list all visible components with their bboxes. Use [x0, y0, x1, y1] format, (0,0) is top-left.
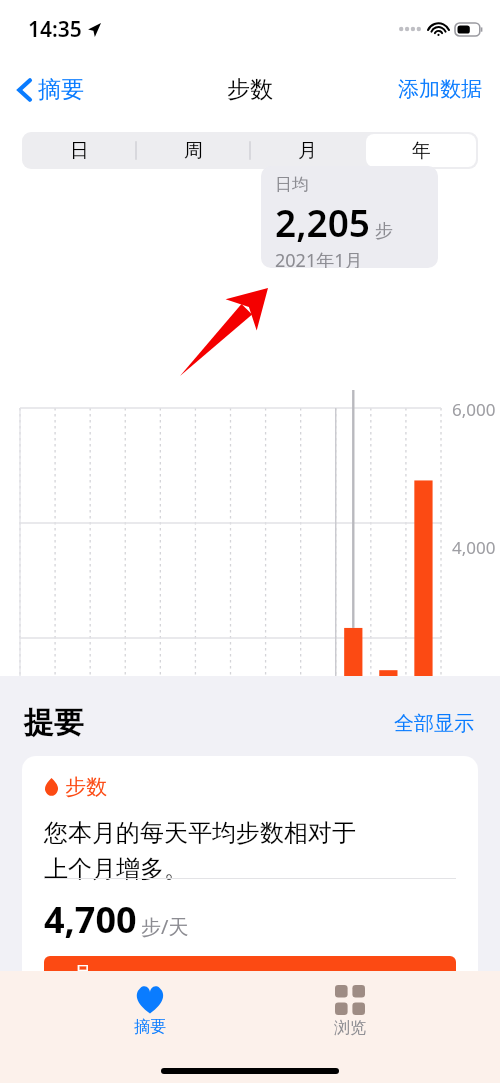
- staticText: 2021年1月: [275, 248, 363, 268]
- staticText: 年: [412, 139, 431, 163]
- staticText: 5: [69, 759, 79, 782]
- staticText: 提要: [24, 704, 84, 742]
- staticText: 全部显示: [394, 711, 474, 736]
- button[interactable]: 步数: [22, 756, 478, 996]
- button[interactable]: 添加数据: [394, 72, 486, 106]
- button[interactable]: 全部显示: [390, 707, 478, 740]
- staticText: 添加数据: [398, 76, 482, 102]
- staticText: 2,000: [452, 674, 496, 697]
- button[interactable]: 日: [24, 134, 134, 167]
- staticText: 步/天: [141, 913, 189, 940]
- button[interactable]: 摘要: [14, 71, 88, 108]
- staticText: 摘要: [134, 1017, 166, 1037]
- staticText: 您本月的每天平均步数相对于: [44, 818, 356, 848]
- staticText: 日: [70, 139, 89, 163]
- button[interactable]: 周: [138, 134, 248, 167]
- staticText: 步数: [65, 774, 107, 800]
- staticText: 14:35: [28, 15, 82, 44]
- staticText: 摘要: [38, 75, 84, 104]
- staticText: 2,205: [275, 197, 370, 247]
- staticText: 步数: [227, 75, 273, 104]
- staticText: 月: [298, 139, 317, 163]
- staticText: 上个月增多。: [44, 854, 188, 884]
- button[interactable]: 月: [252, 134, 362, 167]
- staticText: 6,000: [452, 398, 496, 421]
- staticText: 6: [104, 759, 114, 782]
- staticText: 周: [184, 139, 203, 163]
- button[interactable]: 浏览: [300, 981, 400, 1042]
- staticText: 日均: [275, 174, 309, 195]
- staticText: 步: [375, 220, 393, 243]
- staticText: 4,700: [44, 895, 137, 944]
- button[interactable]: 摘要: [100, 981, 200, 1041]
- staticText: 浏览: [334, 1018, 366, 1038]
- staticText: 一月: [54, 962, 92, 986]
- staticText: 4,000: [452, 536, 496, 559]
- button[interactable]: 年: [366, 134, 476, 167]
- button[interactable]: 日均: [261, 166, 438, 268]
